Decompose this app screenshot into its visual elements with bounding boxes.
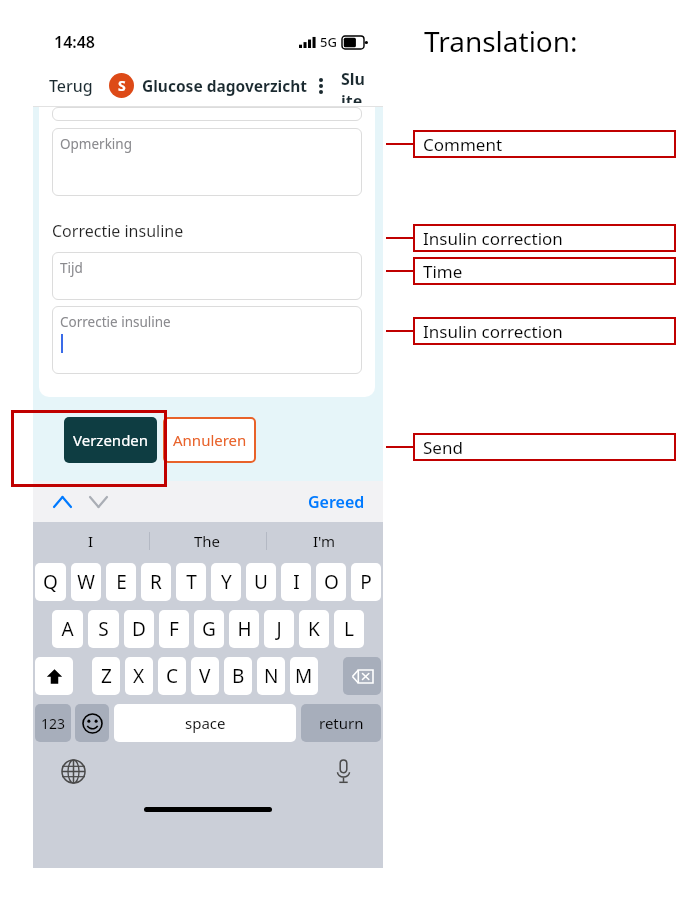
staticText: 5G — [320, 33, 337, 51]
staticText: L — [344, 616, 354, 642]
button[interactable]: I — [281, 563, 311, 601]
button[interactable]: K — [299, 610, 329, 648]
staticText: I'm — [313, 531, 336, 551]
staticText: C — [166, 663, 179, 689]
button[interactable]: More options — [313, 74, 329, 98]
button[interactable]: 123 — [35, 704, 71, 742]
button[interactable]: V — [191, 657, 219, 695]
button[interactable]: U — [246, 563, 276, 601]
button[interactable]: J — [264, 610, 294, 648]
staticText: Insulin correction — [423, 227, 563, 250]
button[interactable]: Annuleren — [163, 417, 256, 463]
button[interactable]: Emoji — [75, 704, 109, 742]
staticText: Tijd — [60, 259, 83, 277]
button[interactable]: X — [125, 657, 153, 695]
button[interactable]: Terug — [47, 71, 95, 101]
staticText: Correctie insuline — [60, 313, 171, 331]
staticText: Send — [423, 436, 463, 459]
staticText: P — [360, 569, 372, 595]
staticText: space — [185, 713, 226, 733]
staticText: W — [77, 569, 95, 595]
staticText: K — [308, 616, 320, 642]
button[interactable]: Change keyboard language — [57, 755, 89, 787]
button[interactable]: Next field — [83, 487, 113, 517]
button[interactable]: Z — [92, 657, 120, 695]
button[interactable]: Opmerking — [52, 128, 362, 196]
staticText: H — [237, 616, 252, 642]
staticText: G — [202, 616, 216, 642]
button[interactable]: F — [159, 610, 189, 648]
staticText: R — [150, 569, 162, 595]
staticText: Verzenden — [73, 430, 149, 450]
button[interactable]: W — [71, 563, 101, 601]
staticText: Time — [423, 260, 463, 283]
staticText: Q — [43, 569, 58, 595]
staticText: T — [186, 569, 197, 595]
button[interactable]: I — [33, 522, 149, 560]
staticText: A — [61, 616, 74, 642]
button[interactable]: Account — [109, 73, 134, 98]
button[interactable]: Dictate — [327, 755, 359, 787]
button[interactable]: A — [52, 610, 83, 648]
staticText: Comment — [423, 133, 503, 156]
staticText: 123 — [41, 714, 66, 733]
staticText: Insulin correction — [423, 320, 563, 343]
staticText: Y — [221, 569, 232, 595]
staticText: E — [116, 569, 127, 595]
button[interactable]: Backspace — [343, 657, 381, 695]
button[interactable]: Y — [211, 563, 241, 601]
button[interactable]: space — [114, 704, 296, 742]
staticText: S — [118, 76, 126, 95]
staticText: Sluiten — [341, 68, 367, 103]
button[interactable]: B — [224, 657, 252, 695]
staticText: D — [132, 616, 146, 642]
staticText: The — [194, 531, 221, 551]
staticText: V — [199, 663, 211, 689]
button[interactable]: T — [176, 563, 206, 601]
button[interactable]: S — [88, 610, 119, 648]
button[interactable]: M — [290, 657, 318, 695]
button[interactable]: D — [124, 610, 154, 648]
staticText: Correctie insuline — [52, 220, 184, 242]
staticText: Terug — [49, 75, 93, 97]
button[interactable]: L — [334, 610, 364, 648]
staticText: Opmerking — [60, 135, 132, 153]
button[interactable]: Sluiten — [339, 64, 369, 107]
staticText: Gereed — [308, 491, 365, 513]
button[interactable]: P — [351, 563, 381, 601]
staticText: O — [324, 569, 339, 595]
staticText: I — [293, 569, 300, 595]
staticText: S — [98, 616, 109, 642]
staticText: J — [276, 616, 282, 642]
button[interactable]: Verzenden — [64, 417, 157, 463]
staticText: Glucose dagoverzicht — [142, 75, 308, 96]
button[interactable]: Gereed — [304, 487, 369, 517]
staticText: I — [88, 531, 94, 551]
staticText: F — [169, 616, 179, 642]
button[interactable]: Shift — [35, 657, 73, 695]
button[interactable]: I'm — [266, 522, 383, 560]
staticText: Z — [101, 663, 112, 689]
button[interactable]: G — [194, 610, 224, 648]
staticText: 14:48 — [54, 31, 96, 53]
button[interactable]: E — [106, 563, 136, 601]
staticText: Annuleren — [173, 430, 247, 450]
button[interactable]: O — [316, 563, 346, 601]
staticText: B — [232, 663, 245, 689]
staticText: U — [254, 569, 268, 595]
staticText: X — [133, 663, 145, 689]
button[interactable]: Previous field — [47, 487, 77, 517]
staticText: M — [295, 663, 313, 689]
staticText: N — [264, 663, 279, 689]
staticText: Translation: — [424, 22, 578, 60]
button[interactable]: Correctie insuline — [52, 306, 362, 374]
staticText: return — [319, 713, 364, 733]
button[interactable]: Tijd — [52, 252, 362, 300]
button[interactable]: H — [229, 610, 259, 648]
button[interactable]: R — [141, 563, 171, 601]
button[interactable]: return — [301, 704, 381, 742]
button[interactable]: The — [149, 522, 266, 560]
button[interactable]: Q — [35, 563, 66, 601]
button[interactable]: N — [257, 657, 285, 695]
button[interactable]: C — [158, 657, 186, 695]
